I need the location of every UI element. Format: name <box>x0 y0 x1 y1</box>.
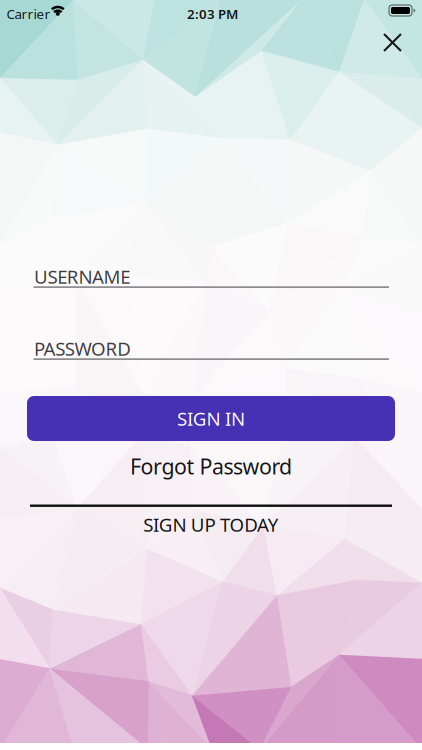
staticText: Forgot Password <box>130 452 292 480</box>
staticText: PASSWORD <box>34 336 131 361</box>
staticText: SIGN UP TODAY <box>143 512 279 537</box>
button[interactable]: Close <box>377 27 407 57</box>
staticText: 2:03 PM <box>187 5 238 23</box>
button[interactable]: Forgot Password <box>130 452 292 480</box>
button[interactable]: SIGN UP TODAY <box>143 512 279 537</box>
staticText: USERNAME <box>34 264 130 289</box>
button[interactable]: Username <box>33 264 389 288</box>
button[interactable]: SIGN IN <box>27 396 395 441</box>
button[interactable]: Password <box>33 336 389 360</box>
staticText: SIGN IN <box>177 406 245 431</box>
staticText: Carrier <box>6 5 50 23</box>
